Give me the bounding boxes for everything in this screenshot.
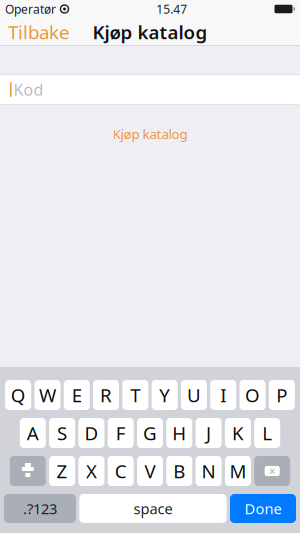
- staticText: Operatør: [5, 1, 56, 17]
- button[interactable]: Q: [5, 380, 31, 410]
- staticText: N: [202, 459, 216, 483]
- button[interactable]: Z: [49, 456, 75, 486]
- staticText: D: [84, 421, 98, 445]
- button[interactable]: N: [196, 456, 222, 486]
- button[interactable]: Shift: [10, 456, 46, 486]
- staticText: X: [86, 459, 97, 483]
- staticText: space: [133, 499, 172, 518]
- staticText: Done: [244, 499, 281, 518]
- staticText: R: [100, 383, 112, 407]
- button[interactable]: H: [166, 418, 192, 448]
- staticText: T: [130, 383, 140, 407]
- staticText: P: [276, 383, 287, 407]
- staticText: U: [187, 383, 201, 407]
- button[interactable]: V: [137, 456, 163, 486]
- staticText: A: [27, 421, 39, 445]
- staticText: Z: [57, 459, 68, 483]
- button[interactable]: L: [254, 418, 280, 448]
- button[interactable]: F: [108, 418, 134, 448]
- button[interactable]: K: [225, 418, 251, 448]
- button[interactable]: B: [166, 456, 192, 486]
- staticText: L: [262, 421, 272, 445]
- staticText: C: [115, 459, 127, 483]
- button[interactable]: X: [78, 456, 104, 486]
- staticText: F: [116, 421, 126, 445]
- button[interactable]: C: [108, 456, 134, 486]
- staticText: J: [206, 421, 211, 445]
- staticText: G: [143, 421, 157, 445]
- button[interactable]: .?123: [4, 494, 76, 523]
- staticText: Kjøp katalog: [92, 20, 207, 44]
- button[interactable]: D: [78, 418, 104, 448]
- button[interactable]: A: [20, 418, 46, 448]
- staticText: I: [220, 383, 226, 407]
- button[interactable]: E: [64, 380, 90, 410]
- button[interactable]: M: [225, 456, 251, 486]
- staticText: E: [72, 383, 82, 407]
- staticText: O: [245, 383, 260, 407]
- staticText: B: [173, 459, 185, 483]
- staticText: 15.47: [156, 1, 187, 17]
- button[interactable]: Delete: [254, 456, 290, 486]
- staticText: Tilbake: [8, 20, 70, 44]
- staticText: K: [232, 421, 244, 445]
- button[interactable]: W: [34, 380, 60, 410]
- button[interactable]: Tilbake: [0, 18, 78, 45]
- staticText: V: [144, 459, 155, 483]
- button[interactable]: I: [210, 380, 236, 410]
- button[interactable]: R: [93, 380, 119, 410]
- button[interactable]: Kjøp katalog: [106, 122, 193, 146]
- staticText: Q: [11, 383, 26, 407]
- staticText: S: [57, 421, 67, 445]
- button[interactable]: U: [181, 380, 207, 410]
- button[interactable]: T: [122, 380, 148, 410]
- button[interactable]: P: [269, 380, 295, 410]
- button[interactable]: J: [196, 418, 222, 448]
- staticText: M: [229, 459, 246, 483]
- button[interactable]: S: [49, 418, 75, 448]
- staticText: Y: [159, 383, 170, 407]
- staticText: .?123: [23, 499, 57, 518]
- staticText: ×: [269, 463, 276, 479]
- button[interactable]: Y: [152, 380, 178, 410]
- staticText: H: [172, 421, 186, 445]
- button[interactable]: space: [79, 494, 227, 523]
- button[interactable]: G: [137, 418, 163, 448]
- button[interactable]: Done: [230, 494, 296, 523]
- staticText: Kod: [13, 79, 43, 100]
- staticText: Kjøp katalog: [112, 125, 187, 143]
- staticText: W: [39, 383, 56, 407]
- button[interactable]: O: [240, 380, 266, 410]
